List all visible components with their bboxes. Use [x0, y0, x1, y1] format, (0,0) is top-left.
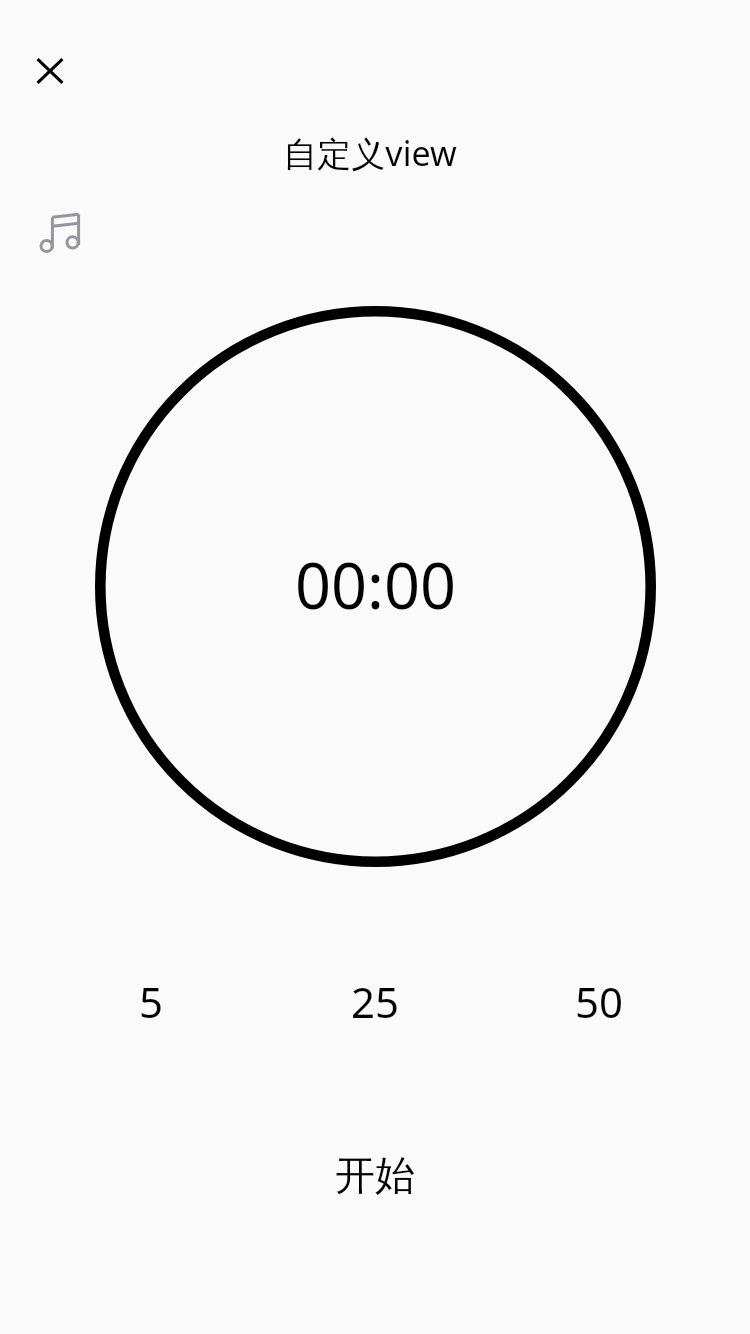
button[interactable]: 50 — [487, 952, 711, 1030]
staticText: 50 — [575, 973, 624, 1030]
staticText: 25 — [351, 973, 400, 1030]
button[interactable]: Sound — [30, 203, 92, 265]
staticText: 自定义view — [0, 130, 745, 176]
button[interactable]: 5 — [39, 952, 263, 1030]
staticText: 5 — [139, 973, 164, 1030]
button[interactable]: Timer dial — [95, 306, 656, 867]
button[interactable]: 开始 — [295, 1120, 455, 1194]
staticText: 00:00 — [295, 542, 457, 628]
button[interactable]: 25 — [263, 952, 487, 1030]
staticText: 开始 — [335, 1150, 415, 1200]
button[interactable]: Close — [17, 38, 82, 103]
